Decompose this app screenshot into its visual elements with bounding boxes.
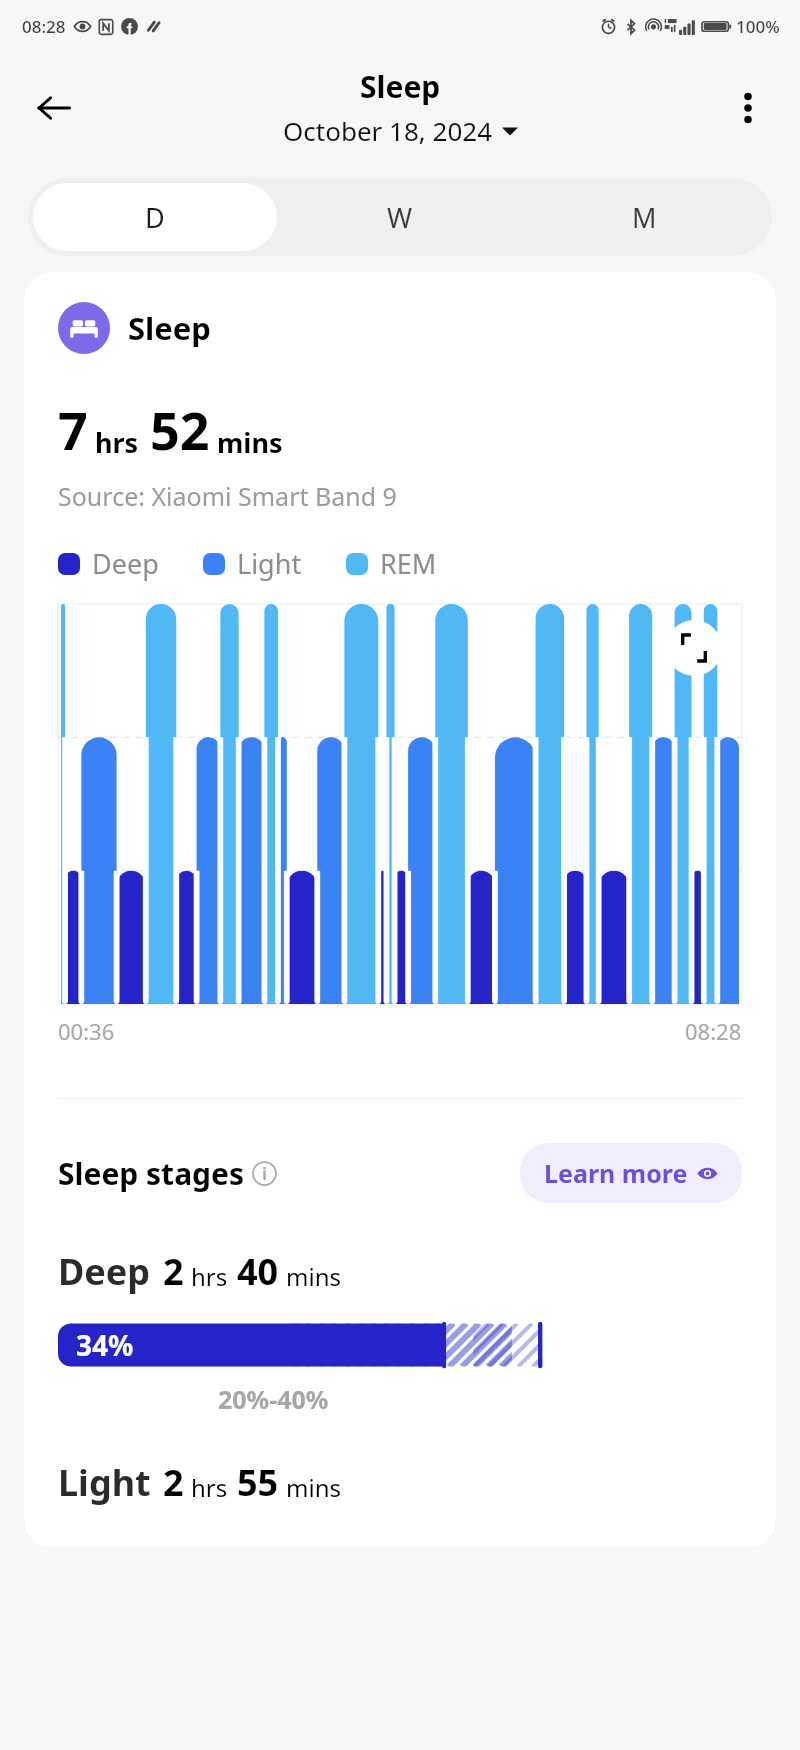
staticText: Learn more xyxy=(544,1156,688,1190)
staticText: D xyxy=(145,199,165,236)
staticText: 2 xyxy=(163,1247,184,1296)
staticText: Light xyxy=(58,1458,151,1507)
staticText: Deep xyxy=(92,545,159,582)
button[interactable]: October 18, 2024 xyxy=(279,111,522,150)
staticText: M xyxy=(632,199,657,236)
button[interactable]: More options xyxy=(720,80,776,136)
button[interactable]: W xyxy=(277,183,522,251)
staticText: Sleep stages xyxy=(58,1153,245,1194)
staticText: 20%-40% xyxy=(218,1382,329,1416)
staticText: Source: Xiaomi Smart Band 9 xyxy=(58,479,397,513)
button[interactable]: Learn more xyxy=(520,1143,742,1203)
staticText: 34% xyxy=(76,1326,134,1364)
button[interactable]: Deep xyxy=(58,545,159,582)
staticText: 00:36 xyxy=(58,1016,115,1046)
staticText: mins xyxy=(286,1471,341,1504)
button[interactable]: D xyxy=(33,183,277,251)
staticText: REM xyxy=(380,545,437,582)
button[interactable]: Light xyxy=(203,545,302,582)
button[interactable]: REM xyxy=(346,545,437,582)
staticText: Sleep xyxy=(128,307,211,349)
button[interactable]: M xyxy=(522,183,767,251)
staticText: hrs xyxy=(191,1471,228,1504)
button[interactable]: Expand chart xyxy=(666,620,722,676)
staticText: 08:28 xyxy=(22,15,66,38)
staticText: 7 xyxy=(58,394,88,465)
staticText: hrs xyxy=(191,1260,228,1293)
staticText: hrs xyxy=(95,424,139,461)
staticText: October 18, 2024 xyxy=(283,113,493,148)
staticText: 52 xyxy=(150,394,210,465)
staticText: 2 xyxy=(163,1458,184,1507)
staticText: 100% xyxy=(736,15,780,38)
button[interactable]: Sleep stages xyxy=(58,1153,277,1194)
staticText: Deep xyxy=(58,1247,151,1296)
staticText: 08:28 xyxy=(685,1016,742,1046)
staticText: Light xyxy=(237,545,302,582)
staticText: mins xyxy=(286,1260,341,1293)
staticText: mins xyxy=(217,424,283,461)
staticText: 40 xyxy=(237,1247,279,1296)
button[interactable]: Back xyxy=(26,80,82,136)
staticText: W xyxy=(387,199,413,236)
staticText: Sleep xyxy=(360,66,441,107)
staticText: 55 xyxy=(237,1458,279,1507)
